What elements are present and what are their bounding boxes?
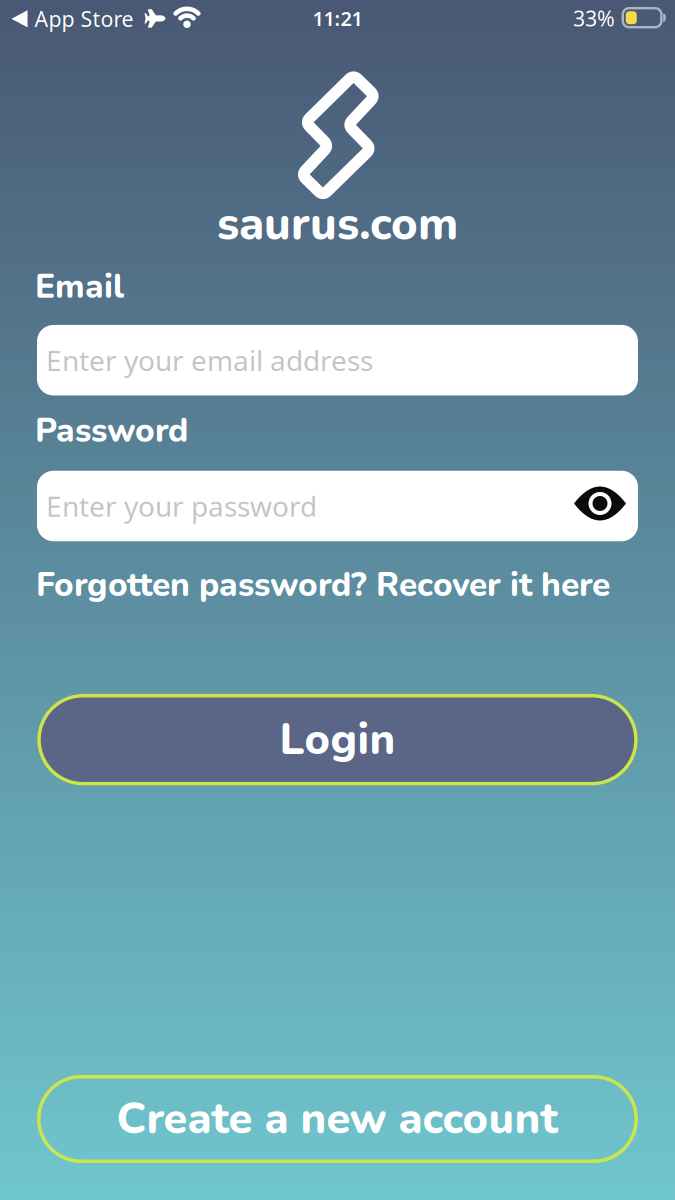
button[interactable]: Forgotten password? Recover it here — [36, 562, 610, 608]
staticText: 33% — [573, 4, 615, 32]
staticText: Create a new account — [116, 1089, 558, 1148]
staticText: Password — [35, 408, 188, 453]
staticText: Enter your email address — [46, 342, 373, 379]
button[interactable]: Show password — [572, 482, 628, 524]
staticText: 11:21 — [312, 5, 362, 32]
staticText: Login — [279, 710, 395, 769]
button[interactable]: Enter your email address — [37, 325, 638, 395]
staticText: App Store — [35, 5, 134, 33]
staticText: Enter your password — [46, 487, 317, 525]
staticText: saurus.com — [217, 193, 458, 255]
button[interactable]: Create a new account — [37, 1075, 638, 1163]
button[interactable]: Back to App Store — [11, 5, 134, 33]
button[interactable]: Enter your password — [37, 471, 638, 541]
staticText: Forgotten password? Recover it here — [36, 562, 610, 608]
staticText: Email — [35, 264, 124, 309]
button[interactable]: Login — [37, 694, 638, 785]
